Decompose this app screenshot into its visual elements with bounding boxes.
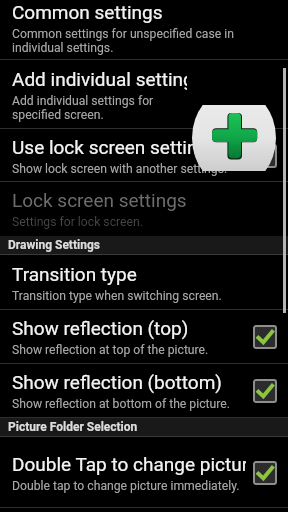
button[interactable]: Show reflection (top) xyxy=(0,310,288,364)
staticText: Use lock screen settings xyxy=(12,136,218,158)
button[interactable]: Show reflection (bottom) xyxy=(0,364,288,418)
button[interactable]: Checked xyxy=(252,378,278,404)
staticText: Transition type when switching screen. xyxy=(12,289,222,303)
button[interactable]: Add individual settings xyxy=(0,60,288,129)
staticText: Common settings xyxy=(12,1,163,23)
staticText: Show reflection (top) xyxy=(12,317,189,339)
staticText: Show reflection (bottom) xyxy=(12,371,222,393)
staticText: Double tap to change picture immediately… xyxy=(12,479,240,493)
staticText: Lock screen settings xyxy=(12,189,187,211)
button[interactable]: Common settings xyxy=(0,0,288,60)
staticText: Common settings for unspecified case in … xyxy=(12,27,260,55)
staticText: Picture Folder Selection xyxy=(8,420,138,434)
staticText: Transition type xyxy=(12,263,137,285)
staticText: Double Tap to change picture xyxy=(12,453,246,475)
button[interactable]: Add xyxy=(192,105,276,171)
staticText: Add individual settings xyxy=(12,68,187,90)
button[interactable]: Use lock screen settings xyxy=(0,129,288,182)
button[interactable]: Transition type xyxy=(0,255,288,310)
staticText: Drawing Settings xyxy=(8,238,100,252)
staticText: Show reflection at top of the picture. xyxy=(12,343,209,357)
staticText: Show reflection at bottom of the picture… xyxy=(12,397,230,411)
button[interactable]: Double Tap to change picture xyxy=(0,437,288,508)
staticText: Show lock screen with another settings. xyxy=(12,162,228,176)
button[interactable]: Checked xyxy=(252,460,278,486)
staticText: Add individual settings for specified sc… xyxy=(12,94,187,122)
button[interactable]: Checked xyxy=(252,324,278,350)
staticText: Settings for lock screen. xyxy=(12,215,143,229)
button[interactable]: Not checked xyxy=(252,143,278,169)
button[interactable]: Lock screen settings xyxy=(0,182,288,236)
